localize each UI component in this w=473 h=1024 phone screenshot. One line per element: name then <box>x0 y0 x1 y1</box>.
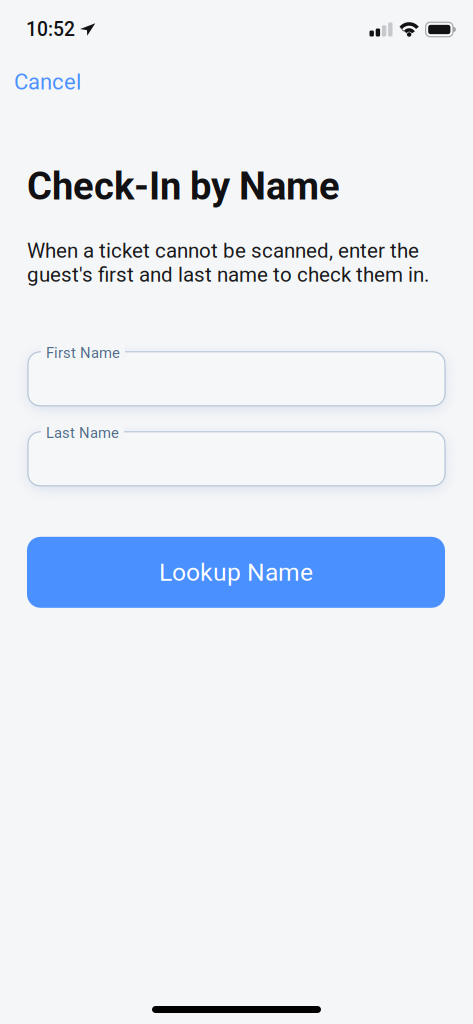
staticText: Last Name <box>46 424 119 442</box>
staticText: 10:52 <box>26 18 75 41</box>
staticText: Check-In by Name <box>27 164 340 209</box>
staticText: Lookup Name <box>159 558 313 587</box>
button[interactable]: Cancel <box>0 59 95 105</box>
button[interactable]: Lookup Name <box>27 537 445 608</box>
staticText: When a ticket cannot be scanned, enter t… <box>27 239 429 287</box>
staticText: First Name <box>46 344 120 362</box>
staticText: Cancel <box>14 69 81 95</box>
